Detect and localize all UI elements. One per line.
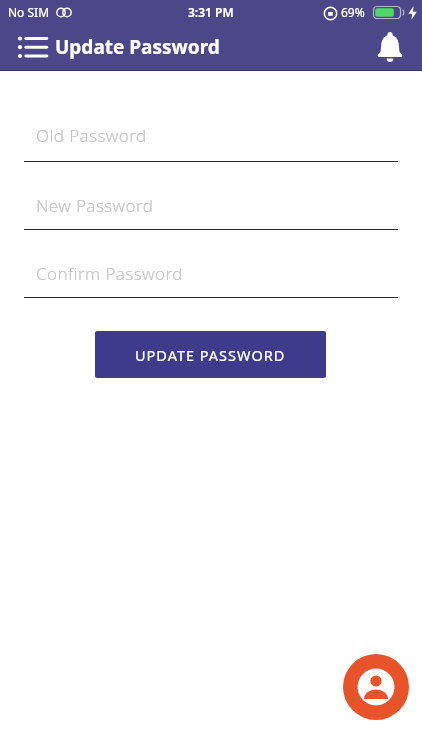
button[interactable]: New Password [24, 190, 398, 230]
staticText: Old Password [36, 124, 147, 147]
staticText: UPDATE PASSWORD [135, 345, 286, 365]
staticText: Confirm Password [36, 262, 183, 285]
staticText: No SIM [8, 4, 50, 20]
staticText: 69% [341, 4, 365, 20]
staticText: Update Password [55, 34, 220, 60]
button[interactable] [10, 30, 54, 66]
staticText: 3:31 PM [188, 4, 234, 20]
button[interactable] [370, 26, 410, 66]
button[interactable] [343, 654, 409, 720]
button[interactable]: Confirm Password [24, 258, 398, 298]
button[interactable]: UPDATE PASSWORD [95, 331, 326, 378]
button[interactable]: Old Password [24, 120, 398, 162]
staticText: New Password [36, 194, 154, 217]
